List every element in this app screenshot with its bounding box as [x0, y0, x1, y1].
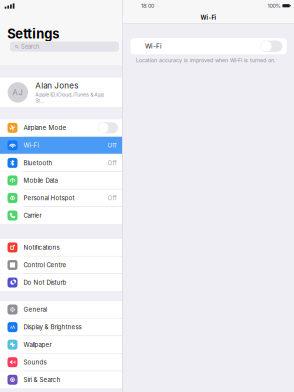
- staticText: Siri & Search: [24, 376, 61, 383]
- staticText: Search: [21, 43, 39, 50]
- staticText: 18:00: [141, 2, 154, 9]
- staticText: Control Centre: [24, 261, 67, 269]
- staticText: Airplane Mode: [24, 124, 67, 131]
- staticText: Wi-Fi: [200, 14, 216, 21]
- button[interactable]: Wi-Fi: [123, 38, 294, 54]
- staticText: 100%: [267, 2, 280, 9]
- staticText: Wallpaper: [24, 341, 52, 348]
- button[interactable]: Siri & Search: [0, 371, 122, 388]
- button[interactable]: AJ: [0, 78, 122, 107]
- staticText: Settings: [7, 26, 59, 41]
- staticText: Off: [108, 159, 117, 167]
- staticText: Apple ID, iCloud, iTunes & App St…: [35, 91, 104, 104]
- button[interactable]: Carrier: [0, 207, 122, 224]
- staticText: Location accuracy is improved when Wi-Fi…: [136, 57, 276, 64]
- button[interactable]: Sounds: [0, 354, 122, 371]
- button[interactable]: Bluetooth: [0, 154, 122, 171]
- staticText: Wi-Fi: [24, 142, 39, 149]
- button[interactable]: Display & Brightness: [0, 319, 122, 336]
- staticText: Wi-Fi: [145, 42, 162, 50]
- button[interactable]: Notifications: [0, 239, 122, 256]
- staticText: Off: [108, 142, 117, 149]
- button[interactable]: Do Not Disturb: [0, 274, 122, 291]
- staticText: Carrier: [24, 212, 42, 219]
- staticText: Sounds: [24, 358, 47, 366]
- button[interactable]: Control Centre: [0, 256, 122, 273]
- staticText: General: [24, 306, 47, 313]
- staticText: Notifications: [24, 244, 60, 251]
- staticText: AJ: [12, 88, 23, 97]
- staticText: Display & Brightness: [24, 323, 82, 331]
- staticText: Bluetooth: [24, 159, 53, 167]
- button[interactable]: Wi-Fi: [0, 137, 122, 154]
- button[interactable]: Mobile Data: [0, 172, 122, 189]
- staticText: Personal Hotspot: [24, 194, 75, 202]
- button[interactable]: Wallpaper: [0, 336, 122, 353]
- button[interactable]: Personal Hotspot: [0, 189, 122, 206]
- staticText: Do Not Disturb: [24, 279, 67, 286]
- button[interactable]: General: [0, 301, 122, 318]
- button[interactable]: Airplane Mode: [0, 119, 122, 136]
- staticText: Mobile Data: [24, 177, 58, 184]
- staticText: Off: [108, 194, 117, 202]
- staticText: Alan Jones: [35, 81, 78, 90]
